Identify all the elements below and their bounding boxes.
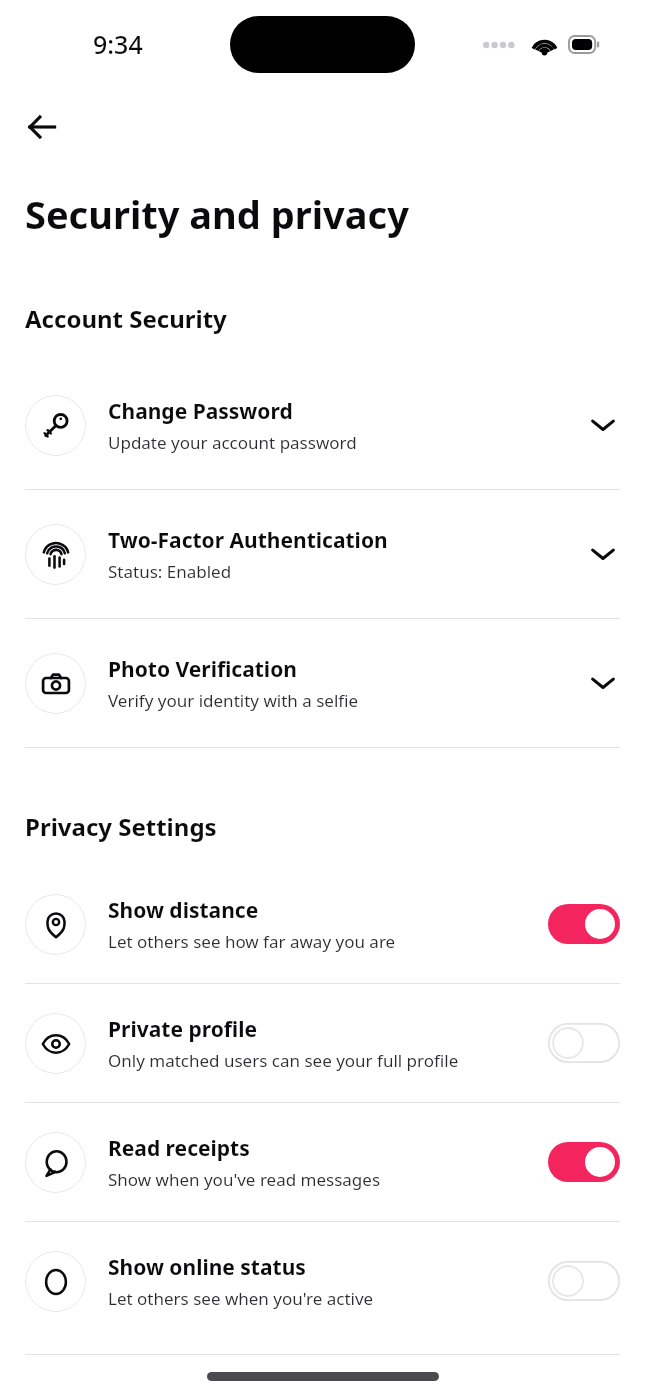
button[interactable]: On [548, 904, 620, 944]
staticText: Privacy Settings [25, 810, 217, 843]
button[interactable]: Back [14, 99, 70, 155]
staticText: Let others see when you're active [108, 1287, 374, 1310]
button[interactable]: Two-Factor Authentication [0, 490, 645, 618]
staticText: Read receipts [108, 1134, 250, 1163]
other: Expand [579, 530, 627, 578]
staticText: Show distance [108, 896, 259, 925]
button[interactable]: Show distance [0, 865, 645, 983]
staticText: 9:34 [93, 27, 143, 61]
staticText: Update your account password [108, 431, 357, 454]
button[interactable]: Photo Verification [0, 619, 645, 747]
other: Expand [579, 659, 627, 707]
button[interactable]: Read receipts [0, 1103, 645, 1221]
staticText: Show online status [108, 1253, 306, 1282]
button[interactable]: Off [548, 1261, 620, 1301]
staticText: Security and privacy [25, 188, 409, 240]
staticText: Private profile [108, 1015, 257, 1044]
button[interactable]: On [548, 1142, 620, 1182]
staticText: Two-Factor Authentication [108, 526, 388, 555]
staticText: Account Security [25, 302, 227, 335]
other: Expand [579, 401, 627, 449]
button[interactable]: Off [548, 1023, 620, 1063]
button[interactable]: Change Password [0, 361, 645, 489]
staticText: Let others see how far away you are [108, 930, 396, 953]
staticText: Only matched users can see your full pro… [108, 1049, 459, 1072]
staticText: Change Password [108, 397, 293, 426]
button[interactable]: Private profile [0, 984, 645, 1102]
button[interactable]: Show online status [0, 1222, 645, 1340]
staticText: Verify your identity with a selfie [108, 689, 359, 712]
staticText: Show when you've read messages [108, 1168, 381, 1191]
staticText: Status: Enabled [108, 560, 232, 583]
staticText: Photo Verification [108, 655, 297, 684]
